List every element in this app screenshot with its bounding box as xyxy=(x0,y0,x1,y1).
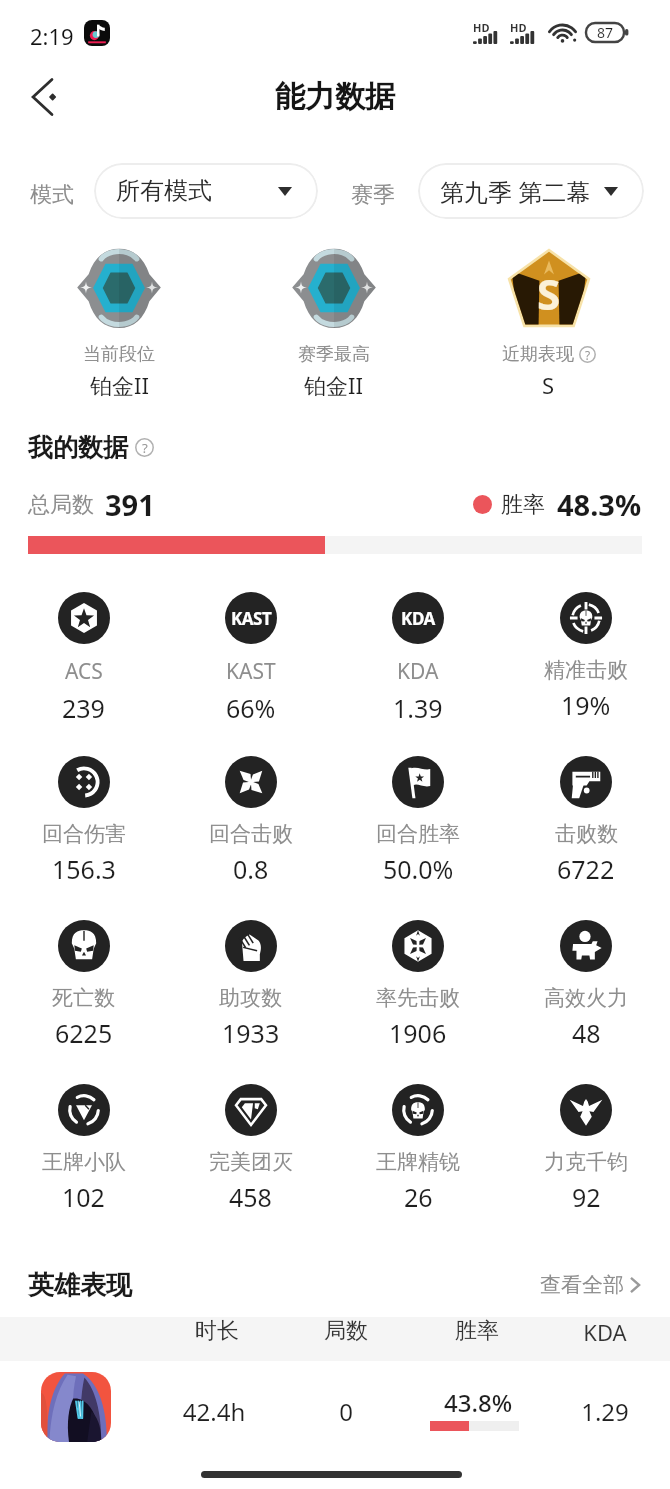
staticText: 精准击败 xyxy=(544,657,628,683)
staticText: KDA xyxy=(525,1317,670,1347)
staticText: 助攻数 xyxy=(219,985,282,1011)
button[interactable]: 击败数 xyxy=(502,756,670,886)
button[interactable]: 所有模式 xyxy=(94,163,318,219)
staticText: 当前段位 xyxy=(83,343,155,366)
button[interactable]: 当前段位 xyxy=(12,244,226,400)
staticText: 239 xyxy=(62,691,105,725)
staticText: KAST xyxy=(226,657,276,686)
staticText: 王牌小队 xyxy=(42,1149,126,1175)
staticText: 48.3% xyxy=(557,485,642,524)
staticText: 高效火力 xyxy=(544,985,628,1011)
button[interactable]: 王牌小队 xyxy=(0,1084,167,1214)
button[interactable]: ACS xyxy=(0,592,167,725)
staticText: KAST xyxy=(231,607,272,630)
button[interactable]: 完美团灭 xyxy=(167,1084,334,1214)
staticText: 近期表现 xyxy=(502,343,574,366)
staticText: 26 xyxy=(404,1180,433,1214)
staticText: 0.8 xyxy=(233,852,269,886)
staticText: 赛季最高 xyxy=(298,343,370,366)
staticText: 局数 xyxy=(266,1317,426,1345)
staticText: 率先击败 xyxy=(376,985,460,1011)
staticText: S xyxy=(542,370,555,400)
staticText: 0 xyxy=(266,1395,426,1428)
button[interactable]: Back xyxy=(10,70,64,124)
button[interactable]: 查看全部 xyxy=(536,1268,644,1302)
button[interactable]: 赛季最高 xyxy=(226,244,441,400)
staticText: 42.4h xyxy=(134,1395,294,1428)
staticText: ? xyxy=(585,347,591,363)
staticText: 王牌精锐 xyxy=(376,1149,460,1175)
staticText: KDA xyxy=(401,607,435,630)
staticText: 6225 xyxy=(55,1016,113,1050)
staticText: ACS xyxy=(65,657,103,686)
button[interactable]: 回合胜率 xyxy=(334,756,502,886)
staticText: 1.29 xyxy=(525,1395,670,1428)
staticText: 102 xyxy=(62,1180,105,1214)
button[interactable]: 第九季 第二幕 xyxy=(418,163,644,219)
button[interactable]: 率先击败 xyxy=(334,920,502,1050)
staticText: 击败数 xyxy=(555,821,618,847)
staticText: 铂金II xyxy=(90,370,149,400)
staticText: 总局数 xyxy=(28,491,94,519)
staticText: 1906 xyxy=(389,1016,447,1050)
button[interactable]: 力克千钧 xyxy=(502,1084,670,1214)
staticText: 50.0% xyxy=(383,852,454,886)
staticText: 能力数据 xyxy=(275,78,395,116)
staticText: 66% xyxy=(226,691,276,725)
button[interactable]: 回合击败 xyxy=(167,756,334,886)
staticText: 458 xyxy=(229,1180,272,1214)
button[interactable]: 高效火力 xyxy=(502,920,670,1050)
staticText: HD xyxy=(473,20,490,35)
staticText: 156.3 xyxy=(52,852,116,886)
button[interactable]: 死亡数 xyxy=(0,920,167,1050)
staticText: 我的数据 xyxy=(28,432,128,463)
staticText: 完美团灭 xyxy=(209,1149,293,1175)
staticText: 模式 xyxy=(30,181,74,209)
button[interactable]: 回合伤害 xyxy=(0,756,167,886)
staticText: KDA xyxy=(397,657,439,686)
staticText: 92 xyxy=(572,1180,601,1214)
button[interactable]: S xyxy=(441,244,656,400)
staticText: 391 xyxy=(105,485,155,524)
staticText: 2:19 xyxy=(30,21,74,51)
button[interactable]: KAST xyxy=(167,592,334,725)
staticText: 胜率 xyxy=(397,1317,557,1345)
staticText: 时长 xyxy=(137,1317,297,1345)
staticText: 胜率 xyxy=(501,491,545,519)
button[interactable]: 王牌精锐 xyxy=(334,1084,502,1214)
staticText: HD xyxy=(510,20,527,35)
staticText: 1.39 xyxy=(393,691,443,725)
staticText: 铂金II xyxy=(304,370,363,400)
staticText: 所有模式 xyxy=(116,176,212,206)
button[interactable]: 42.4h xyxy=(0,1361,670,1461)
staticText: 48 xyxy=(572,1016,601,1050)
staticText: 回合击败 xyxy=(209,821,293,847)
staticText: 第九季 第二幕 xyxy=(440,175,591,208)
button[interactable]: 精准击败 xyxy=(502,592,670,722)
staticText: 赛季 xyxy=(351,181,395,209)
staticText: 英雄表现 xyxy=(28,1269,132,1302)
staticText: 查看全部 xyxy=(540,1272,624,1298)
staticText: ? xyxy=(142,439,148,457)
staticText: 43.8% xyxy=(398,1386,558,1419)
button[interactable]: 我的数据 xyxy=(28,432,154,463)
staticText: 死亡数 xyxy=(52,985,115,1011)
staticText: 6722 xyxy=(557,852,615,886)
staticText: 87 xyxy=(597,23,614,42)
staticText: 19% xyxy=(561,688,611,722)
button[interactable]: 助攻数 xyxy=(167,920,334,1050)
button[interactable]: KDA xyxy=(334,592,502,725)
staticText: 力克千钧 xyxy=(544,1149,628,1175)
staticText: 1933 xyxy=(222,1016,280,1050)
staticText: 回合胜率 xyxy=(376,821,460,847)
staticText: S xyxy=(537,265,561,322)
staticText: 回合伤害 xyxy=(42,821,126,847)
